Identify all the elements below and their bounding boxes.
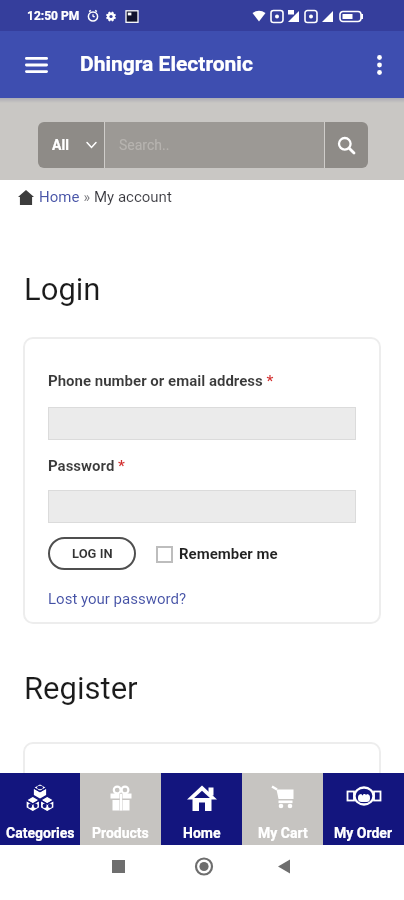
- staticText: All: [52, 137, 69, 153]
- staticText: Register: [24, 670, 138, 706]
- button[interactable]: [134, 845, 269, 900]
- staticText: 12:50 PM: [27, 9, 80, 23]
- button[interactable]: Lost your password?: [48, 590, 187, 608]
- staticText: Search..: [119, 137, 170, 153]
- staticText: My account: [94, 188, 172, 206]
- button[interactable]: [12, 41, 60, 89]
- button[interactable]: LOG IN: [48, 537, 136, 570]
- button[interactable]: Categories: [0, 773, 80, 845]
- staticText: My Cart: [258, 825, 308, 841]
- staticText: »: [80, 189, 94, 205]
- button[interactable]: Home: [39, 188, 80, 206]
- button[interactable]: [0, 845, 134, 900]
- button[interactable]: Home: [161, 773, 242, 845]
- button[interactable]: [325, 122, 368, 168]
- staticText: Phone number or email address *: [48, 372, 274, 390]
- button[interactable]: [48, 407, 356, 440]
- button[interactable]: Remember me: [156, 545, 278, 563]
- staticText: Login: [24, 271, 101, 307]
- staticText: Remember me: [179, 545, 278, 563]
- staticText: Password *: [48, 457, 125, 475]
- button[interactable]: [354, 31, 404, 98]
- staticText: Home: [183, 825, 221, 841]
- staticText: Products: [92, 825, 149, 841]
- button[interactable]: My Order: [323, 773, 404, 845]
- button[interactable]: [269, 845, 404, 900]
- staticText: Dhingra Electronic: [80, 52, 253, 77]
- button[interactable]: [48, 490, 356, 523]
- button[interactable]: My Cart: [242, 773, 323, 845]
- staticText: Categories: [6, 825, 75, 841]
- button[interactable]: All: [38, 122, 104, 168]
- button[interactable]: Products: [80, 773, 161, 845]
- staticText: LOG IN: [72, 546, 113, 561]
- staticText: My Order: [334, 825, 393, 841]
